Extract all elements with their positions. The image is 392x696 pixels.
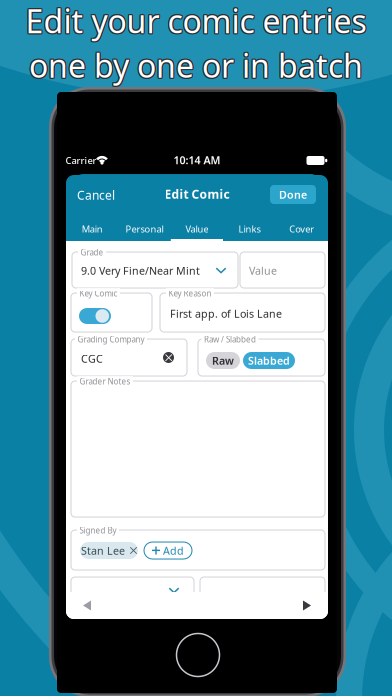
button[interactable]: Main xyxy=(66,215,118,241)
staticText: CGC xyxy=(81,351,103,366)
staticText: Edit your comic entries xyxy=(26,0,367,41)
staticText: Slabbed xyxy=(248,353,290,368)
button[interactable]: First app. of Lois Lane xyxy=(160,293,325,332)
staticText: Grade xyxy=(80,247,103,258)
button[interactable]: Slabbed xyxy=(243,352,295,369)
button[interactable]: Links xyxy=(223,215,276,241)
staticText: 10:14 AM xyxy=(173,153,220,167)
button[interactable]: Grader Notes xyxy=(71,381,325,517)
staticText: Personal xyxy=(126,223,164,235)
button[interactable]: 9.0 Very Fine/Near Mint xyxy=(72,252,238,288)
staticText: Raw / Slabbed xyxy=(204,334,256,345)
button[interactable]: Raw xyxy=(206,352,240,369)
staticText: Edit your comic entries xyxy=(25,0,366,41)
staticText: Edit your comic entries xyxy=(26,0,367,43)
button[interactable]: Stan Lee xyxy=(80,542,138,559)
staticText: 9.0 Very Fine/Near Mint xyxy=(81,263,200,278)
staticText: Add xyxy=(163,543,184,558)
button[interactable]: Personal xyxy=(118,215,171,241)
staticText: one by one or in batch xyxy=(29,43,363,85)
staticText: Raw xyxy=(212,353,234,368)
staticText: Stan Lee xyxy=(81,543,125,558)
staticText: one by one or in batch xyxy=(29,45,363,87)
staticText: First app. of Lois Lane xyxy=(170,306,282,321)
staticText: Carrier xyxy=(65,154,96,167)
staticText: one by one or in batch xyxy=(30,45,364,87)
staticText: Grading Company xyxy=(77,334,144,345)
staticText: Value xyxy=(249,263,277,278)
staticText: Edit Comic xyxy=(164,186,229,202)
staticText: Cancel xyxy=(77,187,115,203)
staticText: Edit your comic entries xyxy=(25,0,366,43)
staticText: Edit your comic entries xyxy=(26,0,367,42)
staticText: one by one or in batch xyxy=(28,43,362,85)
button[interactable]: Done xyxy=(270,185,316,204)
staticText: Key Reason xyxy=(168,288,211,299)
button[interactable]: Previous record xyxy=(83,600,91,610)
staticText: one by one or in batch xyxy=(28,44,362,86)
button[interactable]: Add xyxy=(144,542,192,559)
staticText: Value xyxy=(185,223,208,235)
staticText: Done xyxy=(279,187,307,202)
button[interactable]: Cover xyxy=(276,215,328,241)
button[interactable]: Next record xyxy=(303,600,311,610)
staticText: Links xyxy=(238,223,260,235)
staticText: one by one or in batch xyxy=(30,43,364,85)
button[interactable]: Cancel xyxy=(77,187,123,203)
staticText: Key Comic xyxy=(79,288,117,299)
button[interactable]: Value xyxy=(240,252,325,288)
staticText: one by one or in batch xyxy=(28,45,362,87)
staticText: Edit your comic entries xyxy=(24,0,365,42)
button[interactable]: CGC xyxy=(71,339,187,376)
button[interactable]: Value xyxy=(171,215,223,241)
staticText: Grader Notes xyxy=(79,376,130,387)
staticText: one by one or in batch xyxy=(29,44,363,86)
button[interactable]: Key Comic xyxy=(71,293,152,332)
staticText: Signed By xyxy=(79,525,116,536)
staticText: one by one or in batch xyxy=(30,44,364,86)
staticText: Edit your comic entries xyxy=(24,0,365,43)
staticText: Edit your comic entries xyxy=(25,0,366,42)
staticText: Edit your comic entries xyxy=(24,0,365,41)
staticText: Main xyxy=(82,223,103,235)
staticText: Cover xyxy=(289,223,314,235)
